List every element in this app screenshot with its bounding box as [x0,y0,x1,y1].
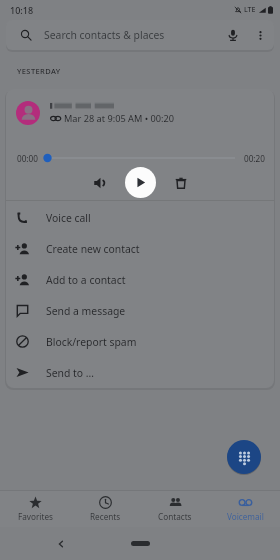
staticText: 00:00 [17,153,38,164]
staticText: Send to … [46,366,95,380]
staticText: Create new contact [46,242,140,256]
button[interactable]: Speaker [87,170,113,196]
button[interactable]: Home [131,541,150,546]
staticText: 00:20 [244,153,265,164]
button[interactable]: Voicemail [210,491,280,527]
button[interactable]: Contacts [140,491,210,527]
staticText: Search contacts & places [44,28,165,42]
button[interactable]: Search contacts & places [6,20,274,50]
button[interactable]: Delete [168,170,194,196]
button[interactable]: Block/report spam [6,326,274,357]
staticText: LTE [244,5,256,15]
button[interactable]: Send to … [6,357,274,388]
button[interactable]: Recents [70,491,140,527]
button[interactable]: Play [125,167,156,198]
button[interactable]: Create new contact [6,233,274,264]
staticText: Mar 28 at 9:05 AM • 00:20 [64,112,174,125]
button[interactable]: Favorites [0,491,70,527]
other: Back [57,540,65,548]
staticText: Favorites [18,511,53,522]
staticText: Voice call [46,211,91,225]
staticText: Recents [90,511,121,522]
button[interactable]: Voice call [6,202,274,233]
staticText: Contacts [158,511,192,522]
button[interactable]: Voice search [222,24,244,46]
button[interactable]: Dialpad [227,440,261,474]
staticText: Add to a contact [46,273,126,287]
staticText: Send a message [46,304,126,318]
button[interactable]: More options [250,25,270,45]
button[interactable]: Send a message [6,295,274,326]
staticText: 10:18 [10,4,34,16]
button[interactable]: Add to a contact [6,264,274,295]
staticText: Block/report spam [46,335,137,349]
staticText: Voicemail [227,511,264,522]
staticText: YESTERDAY [17,66,61,76]
